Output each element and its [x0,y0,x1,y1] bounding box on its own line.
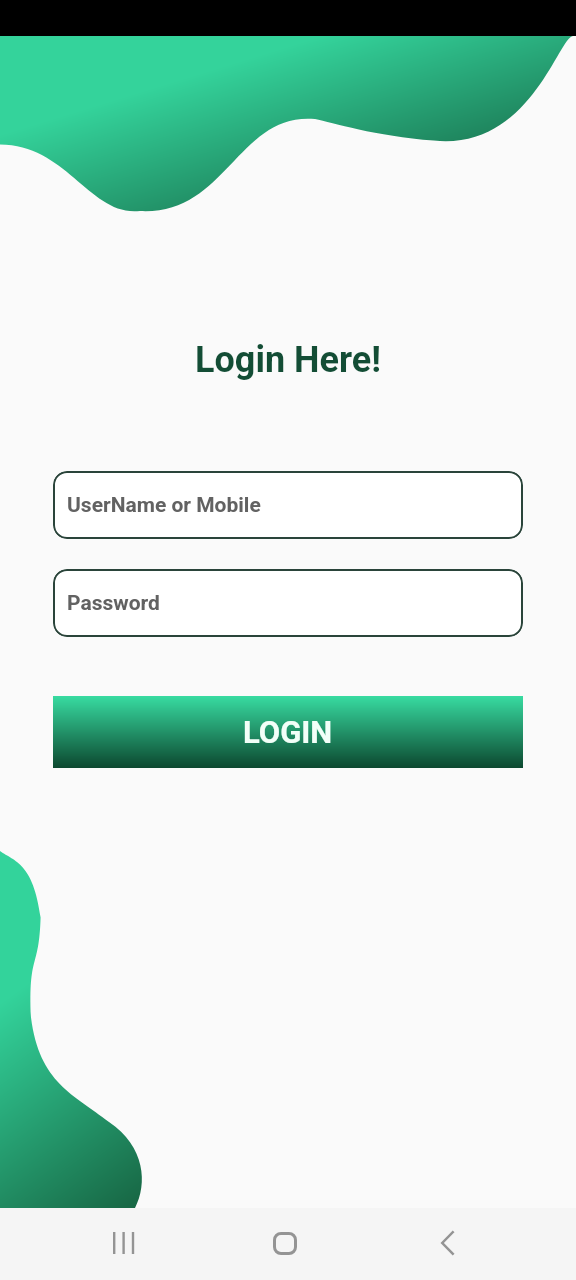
staticText: Login Here! [0,339,576,381]
staticText: Password [67,591,160,616]
staticText: UserName or Mobile [67,493,261,518]
button[interactable]: Password [53,569,523,637]
button[interactable]: Home [261,1219,309,1267]
button[interactable]: Recent apps [100,1219,148,1267]
button[interactable]: UserName or Mobile [53,471,523,539]
button[interactable]: Back [423,1219,471,1267]
button[interactable]: LOGIN [53,696,523,768]
staticText: LOGIN [243,714,333,750]
